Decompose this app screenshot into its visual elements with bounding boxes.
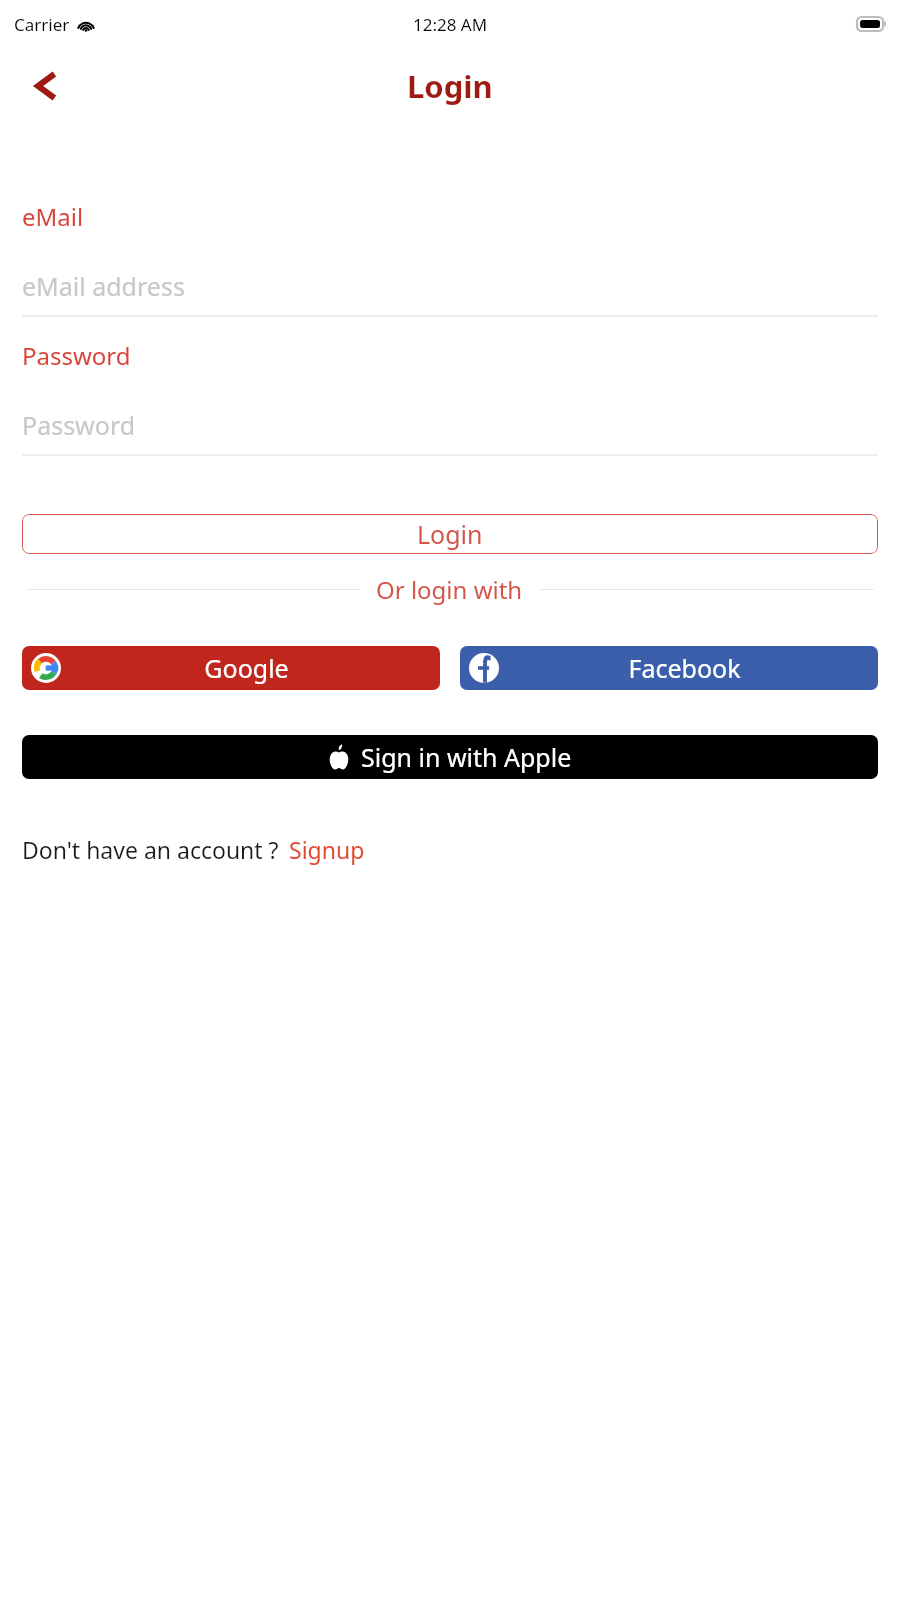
button[interactable]: Google [22,646,440,690]
button[interactable]: Signup [289,834,365,865]
staticText: Signup [289,834,365,865]
button[interactable]: Password [22,408,878,440]
staticText: Facebook [628,651,741,685]
staticText: Password [22,408,136,440]
button[interactable]: Facebook [460,646,878,690]
staticText: Don't have an account ? [22,834,279,865]
staticText: Login [417,517,483,551]
staticText: Sign in with Apple [361,740,572,774]
button[interactable]: Sign in with Apple [22,735,878,779]
staticText: eMail address [22,269,185,301]
staticText: Password [22,339,131,372]
staticText: Google [204,651,289,685]
staticText: Login [407,65,493,107]
button[interactable]: eMail address [22,269,878,301]
button[interactable]: Login [22,514,878,554]
staticText: Carrier [14,13,70,36]
staticText: Or login with [376,573,523,606]
staticText: eMail [22,200,84,233]
button[interactable]: Back [22,62,70,110]
staticText: 12:28 AM [413,13,488,36]
